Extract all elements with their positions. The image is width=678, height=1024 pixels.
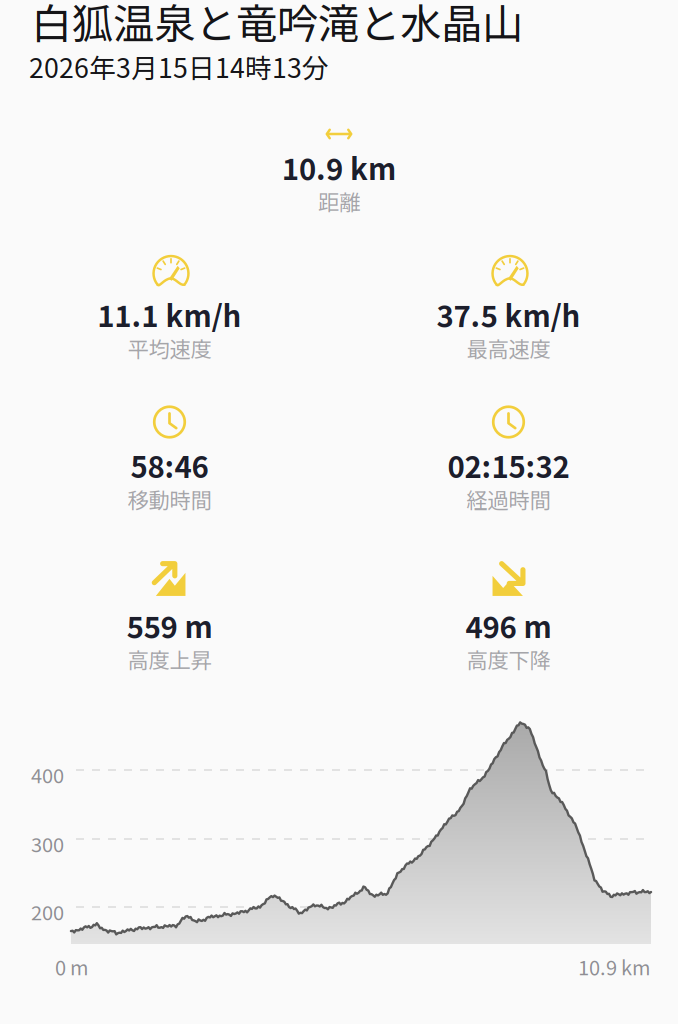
staticText: 400	[31, 760, 64, 789]
staticText: 高度上昇	[127, 643, 211, 674]
staticText: 高度下降	[466, 643, 550, 674]
staticText: 10.9 km	[578, 952, 651, 981]
staticText: 経過時間	[466, 483, 550, 514]
staticText: 移動時間	[127, 483, 211, 514]
staticText: 距離	[318, 185, 360, 216]
staticText: 10.9 km	[282, 146, 396, 188]
staticText: 496 m	[465, 604, 551, 646]
staticText: 2026年3月15日14時13分	[29, 47, 329, 86]
staticText: 58:46	[130, 444, 208, 486]
staticText: 300	[31, 829, 64, 858]
staticText: 最高速度	[466, 332, 550, 363]
staticText: 200	[31, 897, 64, 926]
staticText: 白狐温泉と竜吟滝と水晶山	[31, 0, 523, 51]
staticText: 559 m	[126, 604, 212, 646]
staticText: 37.5 km/h	[436, 293, 580, 335]
staticText: 02:15:32	[447, 444, 569, 486]
staticText: 0 m	[55, 952, 89, 981]
staticText: 11.1 km/h	[97, 293, 241, 335]
staticText: 平均速度	[127, 332, 211, 363]
